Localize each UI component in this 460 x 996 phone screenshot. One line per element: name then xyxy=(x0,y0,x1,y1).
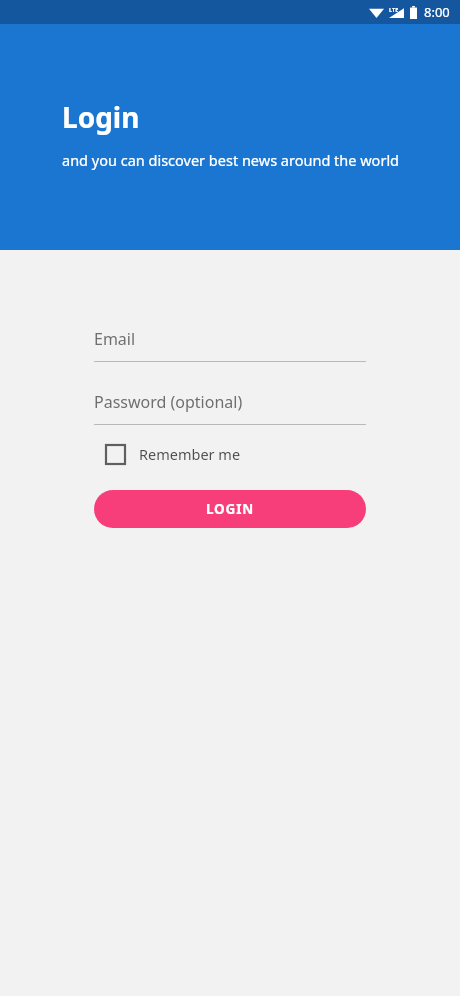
staticText: LTE xyxy=(389,6,399,13)
button[interactable]: LOGIN xyxy=(94,490,366,528)
staticText: Password (optional) xyxy=(94,391,243,413)
button[interactable]: Remember me xyxy=(94,435,241,473)
staticText: LOGIN xyxy=(206,500,254,518)
staticText: Remember me xyxy=(139,444,241,464)
button[interactable]: Password (optional) xyxy=(94,386,366,425)
button[interactable]: Email xyxy=(94,323,366,362)
staticText: 8:00 xyxy=(424,3,450,21)
staticText: Login xyxy=(62,98,140,136)
staticText: and you can discover best news around th… xyxy=(62,150,400,170)
staticText: Email xyxy=(94,328,136,350)
